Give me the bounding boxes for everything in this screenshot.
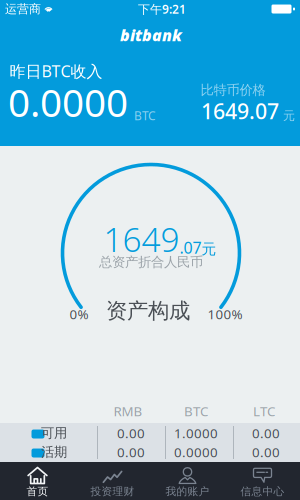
button[interactable]: 信息中心 xyxy=(225,462,300,500)
staticText: BTC xyxy=(184,402,208,420)
button[interactable]: 投资理财 xyxy=(75,462,150,500)
staticText: RMB xyxy=(113,402,142,420)
staticText: 信息中心 xyxy=(240,485,284,498)
staticText: 总资产折合人民币 xyxy=(99,254,203,270)
staticText: 0.00 xyxy=(252,424,280,442)
staticText: 0.00 xyxy=(252,443,280,461)
staticText: 我的账户 xyxy=(165,485,209,498)
staticText: 100% xyxy=(207,305,242,323)
staticText: 首页 xyxy=(26,485,48,498)
staticText: 1.0000 xyxy=(174,424,218,442)
staticText: 0.00 xyxy=(117,424,145,442)
staticText: 0.0000 xyxy=(8,76,128,128)
staticText: 比特币价格 xyxy=(200,82,265,98)
staticText: 0.00 xyxy=(117,443,145,461)
staticText: 昨日BTC收入 xyxy=(9,60,102,82)
button[interactable]: 我的账户 xyxy=(150,462,225,500)
staticText: 1649.07 xyxy=(201,97,279,125)
staticText: .07 xyxy=(179,237,201,258)
button[interactable]: 首页 xyxy=(0,462,75,500)
staticText: 运营商 xyxy=(5,2,41,16)
staticText: 元 xyxy=(283,108,295,123)
staticText: 元 xyxy=(201,240,216,258)
staticText: 1649 xyxy=(103,217,179,261)
staticText: 下午9:21 xyxy=(138,1,186,17)
staticText: 可用 xyxy=(41,425,67,441)
staticText: LTC xyxy=(253,402,275,420)
staticText: BTC xyxy=(134,108,156,124)
staticText: 投资理财 xyxy=(90,485,134,498)
staticText: 0% xyxy=(69,305,88,323)
staticText: 资产构成 xyxy=(106,298,190,324)
staticText: 0.0000 xyxy=(174,443,218,461)
staticText: bitbank xyxy=(120,24,182,46)
staticText: 活期 xyxy=(41,444,67,460)
